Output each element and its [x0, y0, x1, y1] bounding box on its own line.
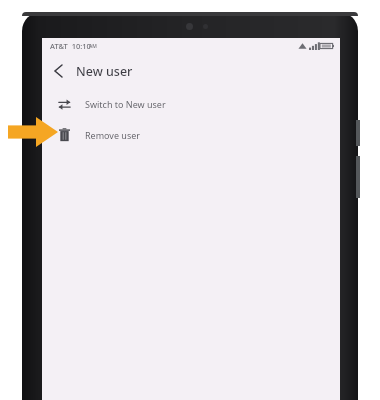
staticText: Remove user: [85, 129, 141, 141]
staticText: Switch to New user: [85, 98, 166, 110]
button[interactable]: Back: [45, 58, 71, 84]
staticText: New user: [76, 63, 133, 80]
button[interactable]: Switch to New user: [42, 88, 340, 119]
staticText: AT&T 10:10: [50, 41, 91, 51]
staticText: AM: [89, 43, 97, 50]
button[interactable]: Remove user: [42, 119, 340, 150]
